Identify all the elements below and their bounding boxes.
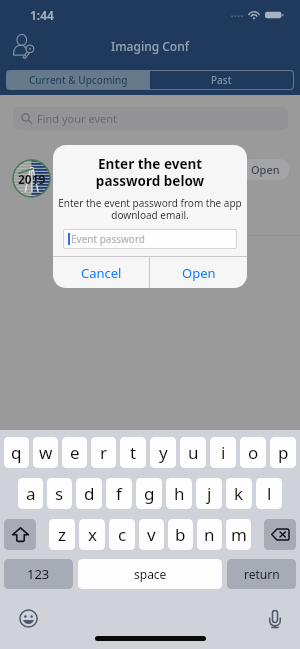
button[interactable]: 2019: [0, 136, 300, 235]
button[interactable]: Backspace: [264, 519, 296, 550]
staticText: Cancel: [81, 264, 122, 282]
staticText: v: [147, 523, 156, 546]
button[interactable]: 123: [4, 559, 73, 589]
button[interactable]: i: [210, 437, 236, 468]
button[interactable]: r: [91, 437, 116, 468]
button[interactable]: Account login: [8, 30, 40, 62]
button[interactable]: y: [150, 437, 176, 468]
button[interactable]: a: [18, 478, 43, 509]
button[interactable]: t: [120, 437, 146, 468]
staticText: Current & Upcoming: [29, 73, 128, 87]
staticText: 1:44: [30, 7, 54, 23]
staticText: Open: [251, 162, 280, 177]
button[interactable]: Emoji keyboard: [16, 606, 40, 630]
button[interactable]: Past: [150, 71, 293, 89]
button[interactable]: g: [136, 478, 162, 509]
button[interactable]: w: [33, 437, 58, 468]
button[interactable]: k: [226, 478, 252, 509]
staticText: s: [55, 482, 64, 505]
staticText: 16-21 February 2019: [61, 180, 148, 192]
button[interactable]: p: [270, 437, 296, 468]
button[interactable]: Find your event: [13, 107, 288, 130]
staticText: q: [11, 441, 22, 464]
staticText: z: [58, 523, 66, 546]
staticText: Enter the event password below: [61, 155, 239, 190]
button[interactable]: q: [4, 437, 29, 468]
button[interactable]: f: [106, 478, 132, 509]
button[interactable]: return: [227, 559, 296, 589]
staticText: w: [39, 441, 53, 464]
button[interactable]: o: [240, 437, 266, 468]
staticText: h: [174, 482, 185, 505]
staticText: Open: [182, 264, 216, 282]
button[interactable]: s: [47, 478, 72, 509]
button[interactable]: h: [166, 478, 192, 509]
button[interactable]: v: [139, 519, 164, 550]
button[interactable]: l: [256, 478, 282, 509]
button[interactable]: space: [78, 559, 222, 589]
button[interactable]: Open: [150, 257, 247, 288]
staticText: m: [231, 523, 247, 546]
staticText: f: [116, 482, 122, 505]
button[interactable]: d: [76, 478, 102, 509]
staticText: b: [175, 523, 186, 546]
button[interactable]: x: [79, 519, 105, 550]
staticText: Find your event: [37, 111, 117, 126]
staticText: y: [159, 441, 168, 464]
staticText: a: [26, 482, 36, 505]
staticText: Enter the event password from the app do…: [57, 196, 243, 222]
staticText: Imaging Conf: [111, 38, 190, 54]
staticText: k: [234, 482, 244, 505]
staticText: Event password: [71, 232, 145, 246]
staticText: Past: [211, 73, 232, 87]
button[interactable]: b: [168, 519, 193, 550]
button[interactable]: c: [109, 519, 135, 550]
staticText: o: [248, 441, 259, 464]
staticText: l: [267, 482, 272, 505]
staticText: 123: [27, 565, 50, 583]
staticText: space: [134, 566, 167, 582]
staticText: return: [244, 566, 280, 582]
button[interactable]: z: [49, 519, 75, 550]
staticText: i: [221, 441, 226, 464]
button[interactable]: n: [197, 519, 222, 550]
staticText: c: [118, 523, 127, 546]
button[interactable]: Open: [242, 159, 289, 180]
staticText: j: [207, 482, 212, 505]
staticText: g: [144, 482, 155, 505]
staticText: t: [130, 441, 137, 464]
staticText: n: [204, 523, 215, 546]
button[interactable]: Event password: [64, 230, 236, 248]
staticText: u: [188, 441, 199, 464]
staticText: SPIE Medical Imaging: [61, 162, 177, 177]
staticText: e: [70, 441, 80, 464]
button[interactable]: Current & Upcoming: [7, 71, 149, 89]
button[interactable]: m: [226, 519, 251, 550]
staticText: 2019: [18, 171, 46, 187]
button[interactable]: Dictation: [263, 607, 287, 631]
button[interactable]: Shift: [4, 519, 36, 550]
button[interactable]: Cancel: [53, 257, 149, 288]
button[interactable]: u: [180, 437, 206, 468]
staticText: d: [84, 482, 95, 505]
staticText: p: [278, 441, 289, 464]
button[interactable]: j: [196, 478, 222, 509]
button[interactable]: e: [62, 437, 87, 468]
staticText: r: [100, 441, 108, 464]
staticText: x: [88, 523, 97, 546]
